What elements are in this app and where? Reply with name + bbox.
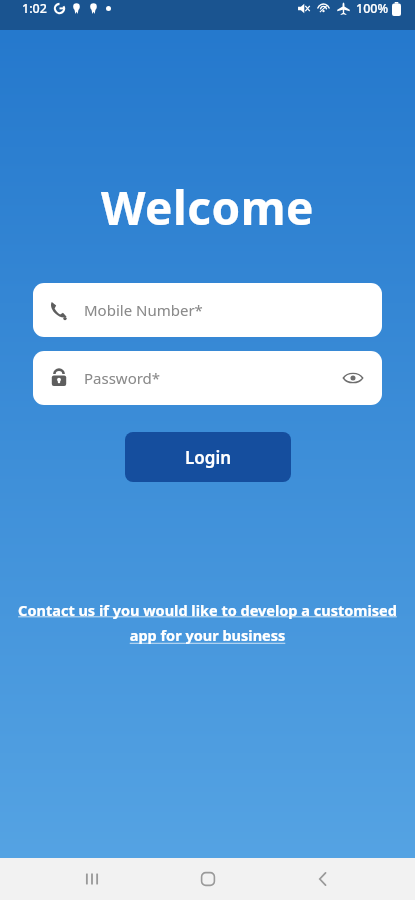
button[interactable]: Contact us if you would like to develop … xyxy=(16,600,399,646)
other: Phone xyxy=(49,300,69,320)
other: Lock xyxy=(49,368,69,388)
button[interactable]: Lock xyxy=(33,351,382,405)
staticText: Welcome xyxy=(101,176,315,239)
button[interactable]: Recents xyxy=(68,858,116,900)
staticText: Contact us if you would like to develop … xyxy=(16,600,399,646)
button[interactable]: Back xyxy=(299,858,347,900)
button[interactable]: Login xyxy=(125,432,291,482)
staticText: Mobile Number* xyxy=(84,300,203,320)
staticText: 100% xyxy=(356,0,389,17)
button[interactable]: Show password xyxy=(340,365,366,391)
staticText: Password* xyxy=(84,368,161,388)
button[interactable]: Phone xyxy=(33,283,382,337)
staticText: 1:02 xyxy=(22,0,47,17)
button[interactable]: Home xyxy=(184,858,232,900)
staticText: Login xyxy=(185,446,232,469)
